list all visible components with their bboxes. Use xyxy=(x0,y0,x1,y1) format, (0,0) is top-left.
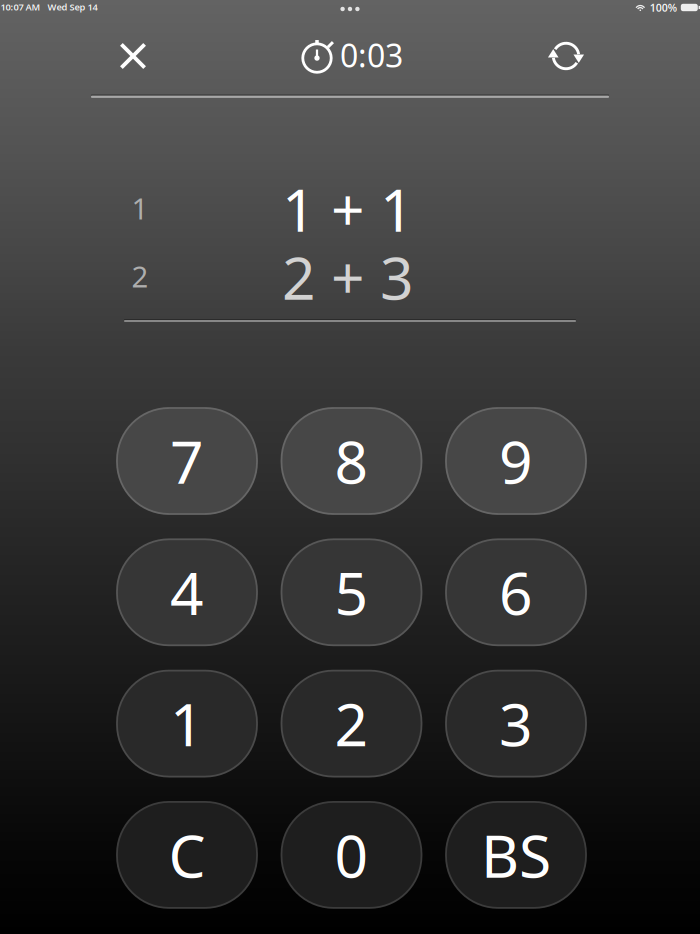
staticText: 1 + 1 xyxy=(282,170,414,248)
staticText: Wed Sep 14 xyxy=(47,1,97,13)
staticText: 4 xyxy=(170,553,204,631)
button[interactable]: 2 xyxy=(281,671,421,777)
button[interactable]: C xyxy=(117,802,257,908)
staticText: 100% xyxy=(650,0,677,15)
button[interactable]: 3 xyxy=(446,671,586,777)
button[interactable]: 6 xyxy=(446,539,586,645)
button[interactable]: 1 xyxy=(117,671,257,777)
staticText: 8 xyxy=(334,422,368,500)
staticText: 2 xyxy=(334,685,368,762)
staticText: 0:03 xyxy=(340,34,403,76)
staticText: 7 xyxy=(170,422,204,500)
button[interactable]: Restart xyxy=(536,26,596,86)
staticText: 10:07 AM xyxy=(0,1,40,13)
button[interactable]: 0 xyxy=(281,802,421,908)
button[interactable]: Close xyxy=(103,26,163,86)
button[interactable]: 4 xyxy=(117,539,257,645)
button[interactable]: 7 xyxy=(117,408,257,514)
staticText: 5 xyxy=(334,553,368,631)
button[interactable]: 8 xyxy=(281,408,421,514)
staticText: 1 xyxy=(170,685,204,762)
staticText: 3 xyxy=(499,685,533,762)
button[interactable]: 5 xyxy=(281,539,421,645)
staticText: 2 + 3 xyxy=(282,238,414,316)
button[interactable]: 9 xyxy=(446,408,586,514)
staticText: 2 xyxy=(131,256,148,295)
button[interactable]: BS xyxy=(446,802,586,908)
staticText: 1 xyxy=(131,188,148,227)
staticText: C xyxy=(168,816,205,894)
staticText: BS xyxy=(481,816,551,894)
staticText: 6 xyxy=(499,553,533,631)
staticText: 0 xyxy=(334,816,368,894)
staticText: 9 xyxy=(499,422,533,500)
